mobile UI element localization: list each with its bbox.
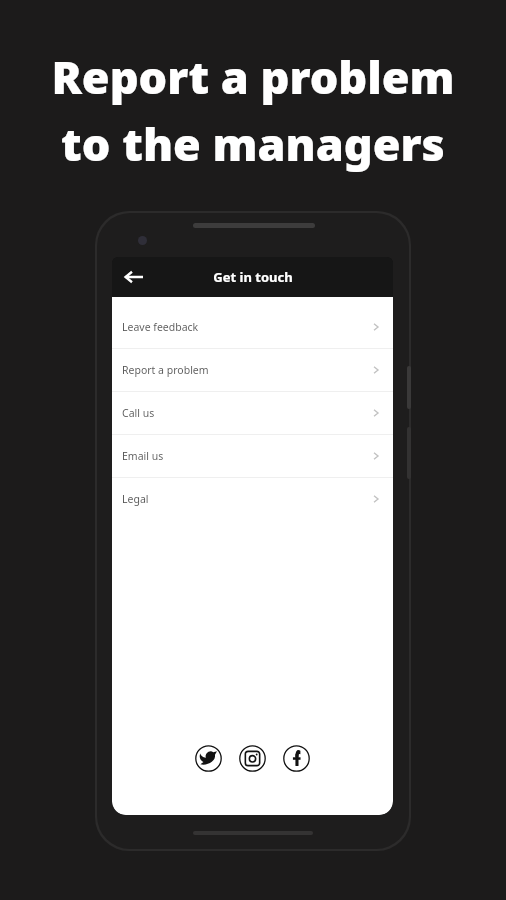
button[interactable]: Instagram [239, 745, 266, 772]
button[interactable]: Leave feedback [112, 306, 393, 348]
button[interactable]: Email us [112, 435, 393, 477]
button[interactable]: Back [118, 261, 150, 293]
button[interactable]: Call us [112, 392, 393, 434]
button[interactable]: Legal [112, 478, 393, 520]
staticText: Email us [122, 449, 164, 463]
staticText: Report a problem [51, 46, 455, 107]
staticText: Leave feedback [122, 320, 199, 334]
button[interactable]: Facebook [283, 745, 310, 772]
staticText: Call us [122, 406, 155, 420]
button[interactable]: Report a problem [112, 349, 393, 391]
staticText: Report a problem [122, 363, 209, 377]
staticText: Legal [122, 492, 149, 506]
staticText: to the managers [61, 113, 445, 174]
staticText: Get in touch [213, 268, 293, 286]
button[interactable]: Twitter [195, 745, 222, 772]
